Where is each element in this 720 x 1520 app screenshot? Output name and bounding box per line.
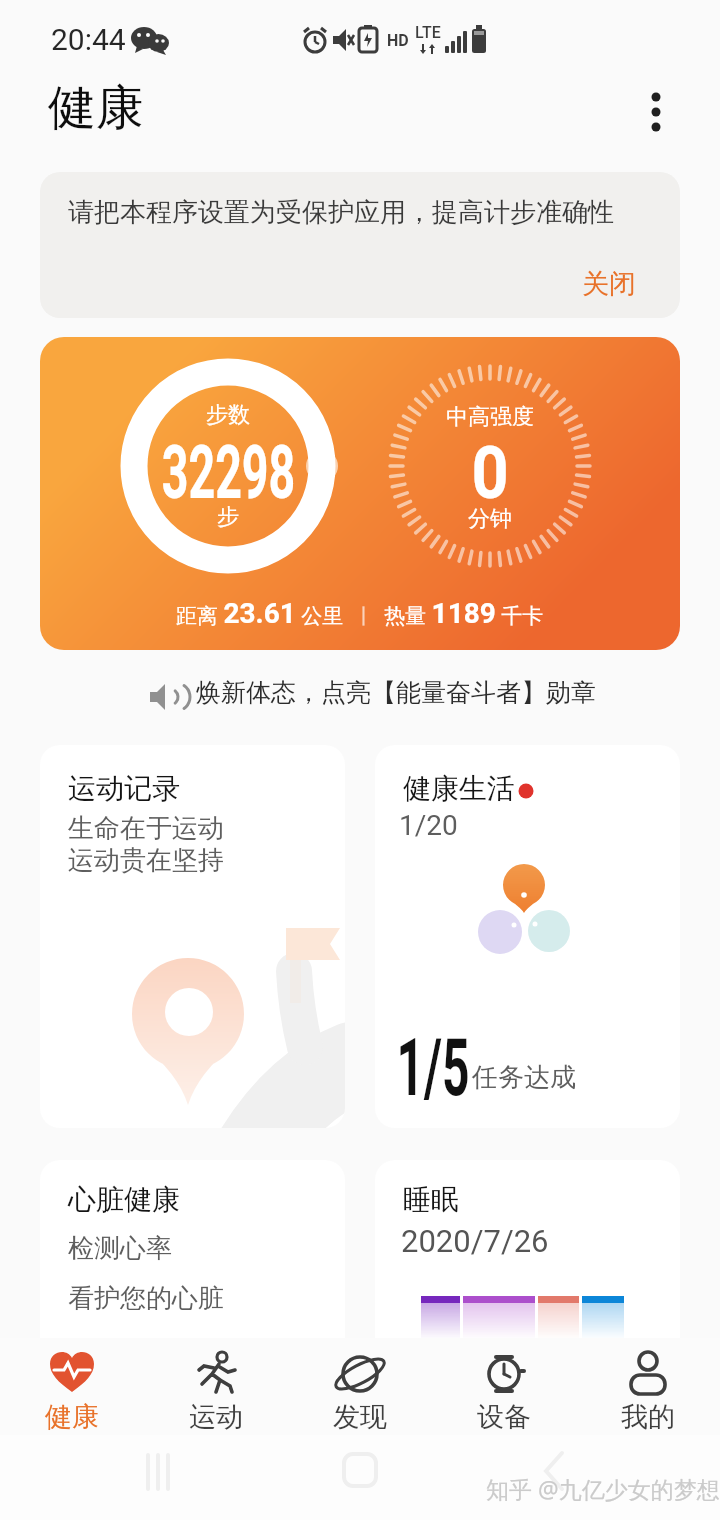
staticText: 中高强度 [446, 403, 534, 431]
staticText: 发现 [333, 1400, 387, 1434]
staticText: 分钟 [468, 505, 512, 533]
staticText: 1/5 [396, 1021, 470, 1101]
staticText: 距离 23.61 公里 丨 热量 1189 千卡 [176, 597, 544, 630]
staticText: 1/20 [399, 809, 458, 842]
staticText: 焕新体态，点亮【能量奋斗者】勋章 [196, 677, 596, 708]
button[interactable]: 睡眠 [375, 1160, 680, 1520]
staticText: 心脏健康 [68, 1182, 180, 1217]
staticText: 运动贵在坚持 [68, 844, 224, 877]
staticText: 健康 [45, 1400, 99, 1434]
staticText: 健康 [48, 78, 144, 138]
staticText: 32298 [161, 429, 296, 505]
staticText: 我的 [621, 1400, 675, 1434]
button[interactable]: 健康生活 [375, 745, 680, 1128]
staticText: 步 [217, 503, 239, 531]
button[interactable]: 运动记录 [40, 745, 345, 1128]
staticText: 健康生活 [403, 771, 515, 806]
staticText: 检测心率 [68, 1232, 172, 1265]
button[interactable]: 我的 [576, 1338, 720, 1435]
button[interactable]: 步数 [40, 337, 680, 650]
button[interactable]: 发现 [288, 1338, 432, 1435]
button[interactable]: 运动 [144, 1338, 288, 1435]
staticText: 步数 [206, 401, 250, 429]
staticText: 关闭 [582, 267, 636, 301]
staticText: LTE [415, 23, 441, 42]
staticText: 生命在于运动 [68, 812, 224, 845]
button[interactable]: 设备 [432, 1338, 576, 1435]
staticText: 20:44 [51, 22, 126, 57]
button[interactable]: 健康 [0, 1338, 144, 1435]
button[interactable] [646, 88, 666, 138]
staticText: 睡眠 [403, 1182, 459, 1217]
staticText: 0 [471, 431, 509, 503]
staticText: 设备 [477, 1400, 531, 1434]
staticText: 看护您的心脏 [68, 1282, 224, 1315]
button[interactable]: 心脏健康 [40, 1160, 345, 1520]
staticText: 2020/7/26 [401, 1223, 549, 1259]
staticText: 知乎 @九亿少女的梦想 [486, 1473, 720, 1504]
staticText: 运动记录 [68, 771, 180, 806]
staticText: 任务达成 [472, 1061, 576, 1094]
staticText: HD [387, 31, 409, 50]
staticText: 请把本程序设置为受保护应用，提高计步准确性 [68, 196, 614, 229]
button[interactable] [130, 672, 600, 718]
button[interactable]: 关闭 [582, 267, 652, 311]
button[interactable]: 请把本程序设置为受保护应用，提高计步准确性 [40, 172, 680, 318]
staticText: 运动 [189, 1400, 243, 1434]
